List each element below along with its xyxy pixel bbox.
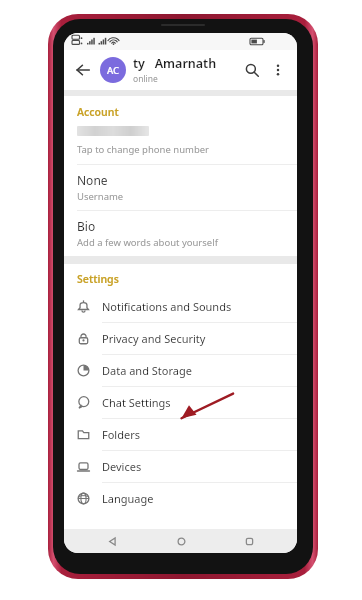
button[interactable]: Privacy and Security xyxy=(64,323,297,354)
button[interactable]: Back xyxy=(70,57,96,83)
button[interactable]: Notifications and Sounds xyxy=(64,291,297,322)
staticText: AC xyxy=(107,64,120,77)
staticText: Folders xyxy=(102,427,140,442)
staticText: Language xyxy=(102,491,154,506)
staticText: Add a few words about yourself xyxy=(77,236,218,249)
button[interactable]: ty Amarnath Cha xyxy=(133,55,239,85)
staticText: Account xyxy=(77,105,119,119)
staticText: Notifications and Sounds xyxy=(102,299,232,314)
button[interactable]: Home xyxy=(161,529,201,553)
button[interactable]: None xyxy=(64,165,297,210)
button[interactable]: More options xyxy=(265,57,291,83)
button[interactable]: Devices xyxy=(64,451,297,482)
button[interactable]: Bio xyxy=(64,211,297,256)
button[interactable]: Search xyxy=(239,57,265,83)
staticText: Devices xyxy=(102,459,142,474)
staticText: Bio xyxy=(77,218,96,234)
button[interactable]: Folders xyxy=(64,419,297,450)
staticText: Chat Settings xyxy=(102,395,171,410)
staticText: None xyxy=(77,172,108,188)
button[interactable]: Back xyxy=(92,529,132,553)
staticText: ty Amarnath Cha xyxy=(133,55,239,72)
staticText: online xyxy=(133,73,158,85)
staticText: Username xyxy=(77,190,124,203)
staticText: Tap to change phone number xyxy=(77,143,210,156)
staticText: Privacy and Security xyxy=(102,331,206,346)
button[interactable]: Language xyxy=(64,483,297,514)
staticText: Settings xyxy=(77,272,119,286)
button[interactable]: AC xyxy=(100,57,126,83)
button[interactable]: Data and Storage xyxy=(64,355,297,386)
button[interactable]: Recents xyxy=(229,529,269,553)
button[interactable]: Chat Settings xyxy=(64,387,297,418)
button[interactable]: Tap to change phone number xyxy=(64,126,297,164)
staticText: Data and Storage xyxy=(102,363,192,378)
